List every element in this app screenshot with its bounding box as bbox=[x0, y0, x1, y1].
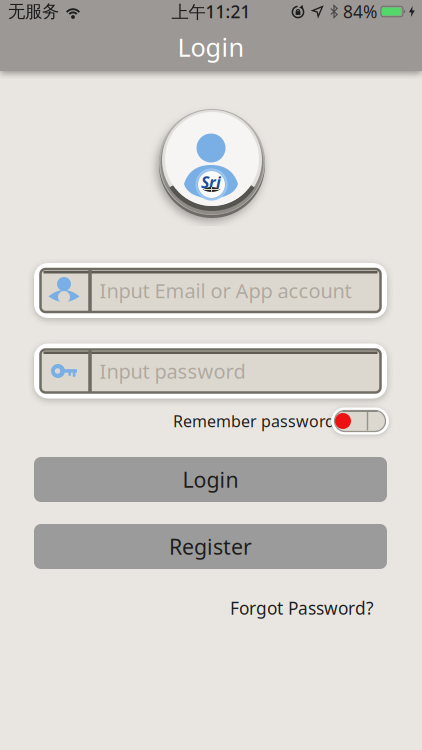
staticText: 上午11:21 bbox=[171, 0, 250, 23]
button[interactable]: Remember password bbox=[331, 407, 389, 434]
button[interactable]: Input Email or App account bbox=[34, 263, 387, 318]
staticText: Login bbox=[177, 30, 244, 64]
staticText: Forgot Password? bbox=[230, 596, 374, 619]
staticText: Register bbox=[169, 532, 252, 561]
button[interactable]: Forgot Password? bbox=[230, 596, 374, 619]
staticText: Remember password bbox=[173, 410, 335, 432]
button[interactable]: Input password bbox=[34, 343, 387, 398]
button[interactable]: Register bbox=[34, 524, 387, 569]
button[interactable]: Sri logo bbox=[159, 109, 265, 215]
button[interactable]: Login bbox=[34, 457, 387, 502]
staticText: Login bbox=[182, 465, 238, 494]
staticText: 无服务 bbox=[8, 1, 59, 22]
staticText: Input password bbox=[99, 358, 245, 384]
staticText: 84% bbox=[343, 0, 377, 23]
staticText: Sri bbox=[201, 171, 221, 193]
staticText: Input Email or App account bbox=[99, 277, 351, 304]
